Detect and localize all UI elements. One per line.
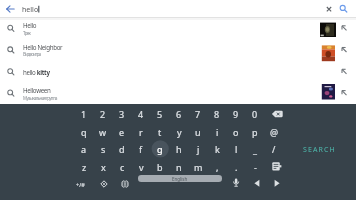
button[interactable]: m	[189, 158, 207, 176]
button[interactable]	[0, 39, 356, 61]
button[interactable]: 9	[227, 105, 245, 123]
staticText: c	[120, 161, 125, 173]
staticText: Helloween	[23, 86, 51, 94]
button[interactable]: b	[151, 158, 169, 176]
staticText: t	[158, 126, 162, 138]
button[interactable]: 5	[151, 105, 169, 123]
button[interactable]: -	[246, 158, 264, 176]
button[interactable]: r	[132, 123, 150, 141]
staticText: u	[195, 126, 201, 138]
staticText: @	[270, 126, 279, 138]
staticText: /	[272, 143, 276, 155]
button[interactable]	[269, 176, 286, 192]
button[interactable]: t	[151, 123, 169, 141]
button[interactable]: q	[75, 123, 93, 141]
staticText: Hello	[23, 21, 37, 29]
staticText: .	[235, 161, 238, 173]
button[interactable]: English	[138, 175, 222, 182]
button[interactable]: u	[189, 123, 207, 141]
button[interactable]: i	[208, 123, 226, 141]
button[interactable]: n	[170, 158, 188, 176]
staticText: g	[157, 143, 163, 155]
button[interactable]: e	[113, 123, 131, 141]
staticText: Видеоигра	[23, 51, 41, 57]
button[interactable]: 7	[189, 105, 207, 123]
staticText: Hello Neighbor	[23, 43, 63, 51]
button[interactable]: l	[227, 140, 245, 158]
staticText: p	[252, 126, 258, 138]
staticText: 8	[214, 108, 220, 120]
button[interactable]: o	[227, 123, 245, 141]
staticText: j	[197, 143, 200, 155]
button[interactable]: SEARCH	[296, 142, 342, 157]
button[interactable]: p	[246, 123, 264, 141]
button[interactable]: x	[94, 158, 112, 176]
staticText: 3	[119, 108, 125, 120]
button[interactable]: g	[151, 140, 169, 158]
button[interactable]: d	[113, 140, 131, 158]
staticText: _	[253, 143, 257, 155]
button[interactable]: w	[94, 123, 112, 141]
staticText: n	[176, 161, 182, 173]
button[interactable]: c	[113, 158, 131, 176]
staticText: i	[216, 126, 219, 138]
button[interactable]: _	[246, 140, 264, 158]
button[interactable]	[228, 176, 245, 192]
staticText: k	[215, 143, 220, 155]
button[interactable]: 8	[208, 105, 226, 123]
staticText: 1	[81, 108, 87, 120]
staticText: 4	[138, 108, 144, 120]
button[interactable]: ,	[208, 158, 226, 176]
button[interactable]	[337, 2, 351, 16]
button[interactable]	[0, 61, 356, 83]
button[interactable]: 3	[113, 105, 131, 123]
staticText: +/#	[76, 181, 85, 188]
button[interactable]: s	[94, 140, 112, 158]
button[interactable]: 1	[75, 105, 93, 123]
button[interactable]: 6	[170, 105, 188, 123]
button[interactable]: .	[227, 158, 245, 176]
button[interactable]	[2, 1, 19, 16]
button[interactable]	[0, 83, 356, 105]
staticText: s	[101, 143, 106, 155]
staticText: English	[172, 176, 188, 182]
button[interactable]	[116, 176, 133, 192]
button[interactable]: 4	[132, 105, 150, 123]
button[interactable]: 2	[94, 105, 112, 123]
button[interactable]: @	[265, 123, 283, 141]
button[interactable]: f	[132, 140, 150, 158]
button[interactable]: y	[170, 123, 188, 141]
button[interactable]	[267, 158, 285, 175]
staticText: -	[254, 161, 257, 173]
button[interactable]: +/#	[71, 175, 89, 193]
button[interactable]: a	[75, 140, 93, 158]
staticText: a	[81, 143, 87, 155]
button[interactable]: /	[265, 140, 283, 158]
staticText: l	[235, 143, 238, 155]
staticText: 5	[157, 108, 163, 120]
button[interactable]: 0	[246, 105, 264, 123]
button[interactable]	[0, 17, 356, 39]
staticText: ,	[216, 161, 219, 173]
button[interactable]	[267, 105, 285, 122]
staticText: 0	[252, 108, 258, 120]
staticText: z	[82, 161, 87, 173]
staticText: 9	[233, 108, 239, 120]
staticText: v	[139, 161, 144, 173]
staticText: r	[139, 126, 143, 138]
staticText: 7	[195, 108, 201, 120]
button[interactable]: h	[170, 140, 188, 158]
button[interactable]	[322, 2, 336, 16]
button[interactable]: k	[208, 140, 226, 158]
staticText: SEARCH	[303, 145, 336, 155]
button[interactable]: z	[75, 158, 93, 176]
button[interactable]	[95, 176, 112, 192]
staticText: 2	[100, 108, 106, 120]
staticText: f	[139, 143, 143, 155]
staticText: b	[157, 161, 163, 173]
button[interactable]: v	[132, 158, 150, 176]
button[interactable]: j	[189, 140, 207, 158]
button[interactable]	[249, 176, 266, 192]
staticText: d	[119, 143, 125, 155]
staticText: e	[119, 126, 125, 138]
